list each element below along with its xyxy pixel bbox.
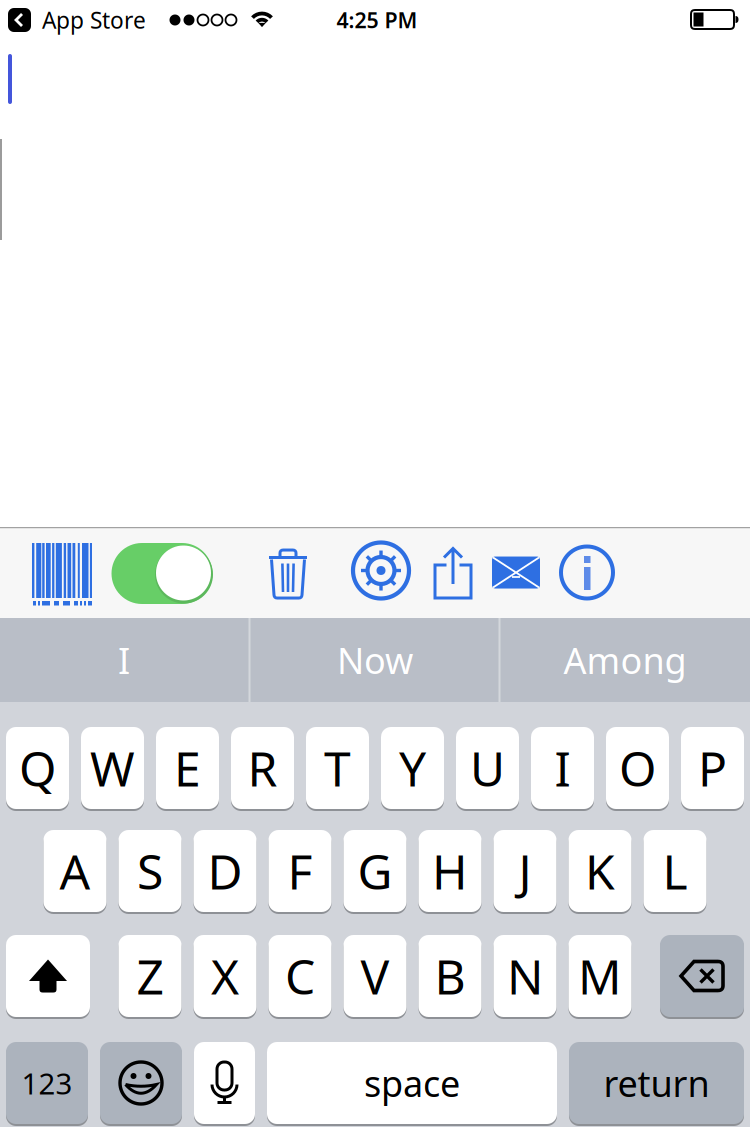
staticText: C [285, 944, 315, 1008]
staticText: V [360, 944, 389, 1008]
staticText: L [662, 839, 687, 903]
button[interactable]: Share [433, 547, 472, 599]
button[interactable]: E [156, 726, 219, 810]
staticText: E [174, 736, 201, 800]
button[interactable]: U [456, 726, 519, 810]
button[interactable]: N [493, 934, 556, 1018]
button[interactable]: space [267, 1041, 557, 1125]
button[interactable]: K [568, 829, 631, 913]
staticText: T [324, 736, 351, 800]
button[interactable]: Email [492, 556, 540, 588]
staticText: P [698, 736, 727, 800]
staticText: space [364, 1059, 460, 1107]
button[interactable]: G [343, 829, 406, 913]
button[interactable]: Z [118, 934, 181, 1018]
button[interactable]: A [43, 829, 106, 913]
staticText: 123 [21, 1063, 72, 1102]
staticText: 4:25 PM [336, 6, 417, 34]
button[interactable]: I [1, 618, 247, 702]
staticText: K [585, 839, 615, 903]
staticText: Among [563, 636, 686, 684]
button[interactable]: W [81, 726, 144, 810]
button[interactable]: T [306, 726, 369, 810]
button[interactable]: D [193, 829, 256, 913]
button[interactable]: Numbers [6, 1041, 88, 1125]
staticText: Q [19, 736, 56, 800]
button[interactable]: Toggle on [111, 543, 212, 604]
button[interactable]: C [268, 934, 331, 1018]
button[interactable]: R [231, 726, 294, 810]
button[interactable]: Q [6, 726, 69, 810]
button[interactable]: O [606, 726, 669, 810]
staticText: O [619, 736, 656, 800]
button[interactable]: Now [252, 618, 498, 702]
button[interactable]: return [569, 1041, 744, 1125]
staticText: return [603, 1059, 709, 1107]
staticText: A [59, 839, 90, 903]
button[interactable]: H [418, 829, 481, 913]
staticText: B [434, 944, 465, 1008]
button[interactable]: L [643, 829, 706, 913]
staticText: G [357, 839, 392, 903]
staticText: J [518, 839, 531, 903]
button[interactable]: Among [502, 618, 748, 702]
staticText: I [118, 636, 130, 684]
button[interactable]: Back to App Store [8, 0, 184, 40]
button[interactable]: F [268, 829, 331, 913]
button[interactable]: Info [560, 544, 613, 601]
staticText: N [507, 944, 543, 1008]
button[interactable]: Dictate [194, 1041, 255, 1125]
staticText: Y [399, 736, 426, 800]
button[interactable]: J [493, 829, 556, 913]
button[interactable]: Delete [660, 934, 744, 1018]
button[interactable]: Delete [269, 548, 307, 599]
button[interactable]: S [118, 829, 181, 913]
button[interactable]: Shift [6, 934, 90, 1018]
staticText: H [432, 839, 468, 903]
staticText: U [470, 736, 505, 800]
button[interactable]: I [531, 726, 594, 810]
button[interactable]: V [343, 934, 406, 1018]
staticText: I [554, 736, 570, 800]
button[interactable]: X [193, 934, 256, 1018]
button[interactable]: M [568, 934, 631, 1018]
staticText: F [287, 839, 312, 903]
staticText: S [137, 839, 163, 903]
button[interactable]: Scan barcode [32, 543, 92, 605]
button[interactable]: Emoji [100, 1041, 182, 1125]
staticText: X [211, 944, 239, 1008]
button[interactable]: Y [381, 726, 444, 810]
staticText: App Store [42, 5, 146, 35]
button[interactable]: P [681, 726, 744, 810]
staticText: R [247, 736, 277, 800]
staticText: Z [136, 944, 163, 1008]
staticText: Now [337, 636, 413, 684]
staticText: W [90, 736, 135, 800]
staticText: D [207, 839, 242, 903]
button[interactable]: B [418, 934, 481, 1018]
staticText: M [578, 944, 622, 1008]
button[interactable]: Settings [352, 542, 409, 599]
